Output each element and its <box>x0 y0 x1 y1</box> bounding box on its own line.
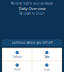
staticText: Files <box>14 68 20 71</box>
staticText: Continue where you left off <box>11 41 52 44</box>
button[interactable]: Tasks <box>33 49 61 60</box>
staticText: Welcome back to your workspace <box>10 2 53 5</box>
button[interactable]: Inbox <box>3 49 31 60</box>
staticText: Tasks <box>44 55 49 59</box>
staticText: Tap a card to begin <box>19 12 45 15</box>
button[interactable]: Continue where you left off <box>2 39 62 46</box>
staticText: Daily Overview <box>18 6 45 11</box>
staticText: Inbox <box>13 55 21 59</box>
button[interactable]: Files <box>3 61 31 72</box>
button[interactable]: Team <box>33 61 61 72</box>
staticText: Team <box>44 68 50 71</box>
